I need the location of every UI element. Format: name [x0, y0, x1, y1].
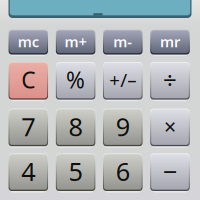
- button[interactable]: %: [56, 62, 95, 100]
- staticText: mc: [18, 32, 39, 51]
- staticText: mr: [160, 32, 180, 51]
- button[interactable]: m-: [103, 29, 142, 54]
- button[interactable]: 6: [103, 153, 142, 191]
- staticText: 4: [21, 154, 35, 188]
- staticText: 6: [116, 154, 130, 188]
- staticText: ×: [164, 112, 176, 140]
- staticText: m+: [65, 32, 87, 51]
- button[interactable]: C: [9, 62, 48, 100]
- staticText: %: [66, 65, 85, 95]
- button[interactable]: mr: [150, 29, 190, 54]
- staticText: −: [163, 154, 177, 188]
- staticText: 8: [69, 110, 83, 143]
- button[interactable]: 4: [9, 153, 48, 191]
- button[interactable]: 5: [56, 153, 95, 191]
- staticText: 9: [116, 110, 130, 143]
- staticText: ÷: [163, 64, 177, 96]
- staticText: C: [21, 65, 35, 95]
- staticText: 7: [21, 110, 35, 143]
- button[interactable]: 8: [56, 109, 95, 146]
- staticText: +/–: [109, 67, 136, 92]
- staticText: m-: [113, 32, 132, 51]
- button[interactable]: ÷: [150, 62, 190, 100]
- button[interactable]: mc: [9, 29, 48, 54]
- button[interactable]: 7: [9, 109, 48, 146]
- button[interactable]: ×: [150, 109, 190, 146]
- button[interactable]: −: [150, 153, 190, 191]
- button[interactable]: m+: [56, 29, 95, 54]
- button[interactable]: +/–: [103, 62, 142, 100]
- button[interactable]: 9: [103, 109, 142, 146]
- staticText: 5: [69, 154, 83, 188]
